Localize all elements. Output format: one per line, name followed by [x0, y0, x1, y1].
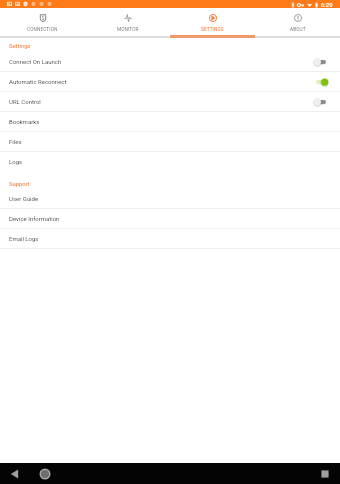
button[interactable]: Automatic Reconnect [0, 72, 340, 92]
staticText: Settings [9, 43, 31, 50]
button[interactable]: Back [6, 466, 22, 482]
staticText: MONITOR [117, 27, 139, 33]
staticText: Support [9, 181, 30, 188]
button[interactable]: SETTINGS [170, 8, 255, 38]
button[interactable]: Files [0, 132, 340, 152]
button[interactable]: URL Control [0, 92, 340, 112]
button[interactable]: CONNECTION [0, 8, 85, 38]
staticText: Logs [9, 158, 23, 165]
staticText: Email Logs [9, 235, 39, 242]
button[interactable]: Email Logs [0, 229, 340, 249]
staticText: ABOUT [290, 27, 306, 33]
button[interactable]: Home [37, 466, 53, 482]
button[interactable]: Connect On Launch [0, 52, 340, 72]
staticText: User Guide [9, 195, 39, 202]
button[interactable]: Device Information [0, 209, 340, 229]
staticText: CONNECTION [27, 27, 58, 33]
staticText: Connect On Launch [9, 58, 314, 65]
staticText: Bookmarks [9, 118, 40, 125]
button[interactable]: ABOUT [255, 8, 340, 38]
staticText: URL Control [9, 98, 314, 105]
button[interactable]: Logs [0, 152, 340, 172]
button[interactable]: User Guide [0, 189, 340, 209]
staticText: Device Information [9, 215, 60, 222]
button[interactable]: Recents [317, 466, 333, 482]
staticText: 6:29 [321, 1, 333, 8]
staticText: Files [9, 138, 22, 145]
staticText: SETTINGS [201, 27, 224, 33]
button[interactable]: MONITOR [85, 8, 170, 38]
button[interactable]: Bookmarks [0, 112, 340, 132]
staticText: Automatic Reconnect [9, 78, 314, 85]
